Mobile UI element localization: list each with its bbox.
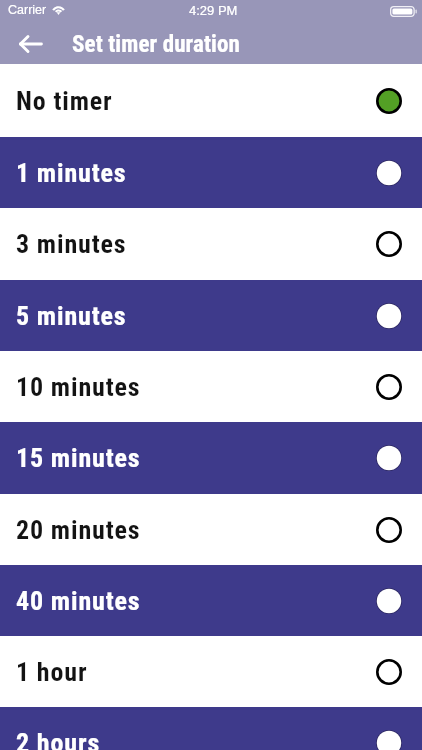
button[interactable]: 3 minutes	[0, 208, 422, 280]
staticText: No timer	[16, 86, 113, 116]
button[interactable]: 15 minutes	[0, 422, 422, 494]
button[interactable]: 5 minutes	[0, 280, 422, 351]
staticText: 4:29 PM	[189, 3, 238, 18]
button[interactable]: 40 minutes	[0, 565, 422, 636]
staticText: 5 minutes	[16, 301, 127, 331]
staticText: 2 hours	[16, 728, 101, 750]
staticText: 40 minutes	[16, 586, 141, 616]
staticText: 1 minutes	[16, 158, 127, 188]
button[interactable]: No timer	[0, 64, 422, 137]
button[interactable]: 10 minutes	[0, 351, 422, 422]
button[interactable]: Back	[0, 24, 61, 64]
button[interactable]: 2 hours	[0, 707, 422, 750]
staticText: Carrier	[8, 3, 47, 17]
staticText: 3 minutes	[16, 229, 127, 259]
button[interactable]: 1 hour	[0, 636, 422, 707]
staticText: 15 minutes	[16, 443, 141, 473]
staticText: 1 hour	[16, 657, 88, 687]
staticText: 20 minutes	[16, 515, 141, 545]
staticText: 10 minutes	[16, 372, 141, 402]
button[interactable]: 20 minutes	[0, 494, 422, 565]
staticText: Set timer duration	[72, 31, 240, 58]
button[interactable]: 1 minutes	[0, 137, 422, 208]
